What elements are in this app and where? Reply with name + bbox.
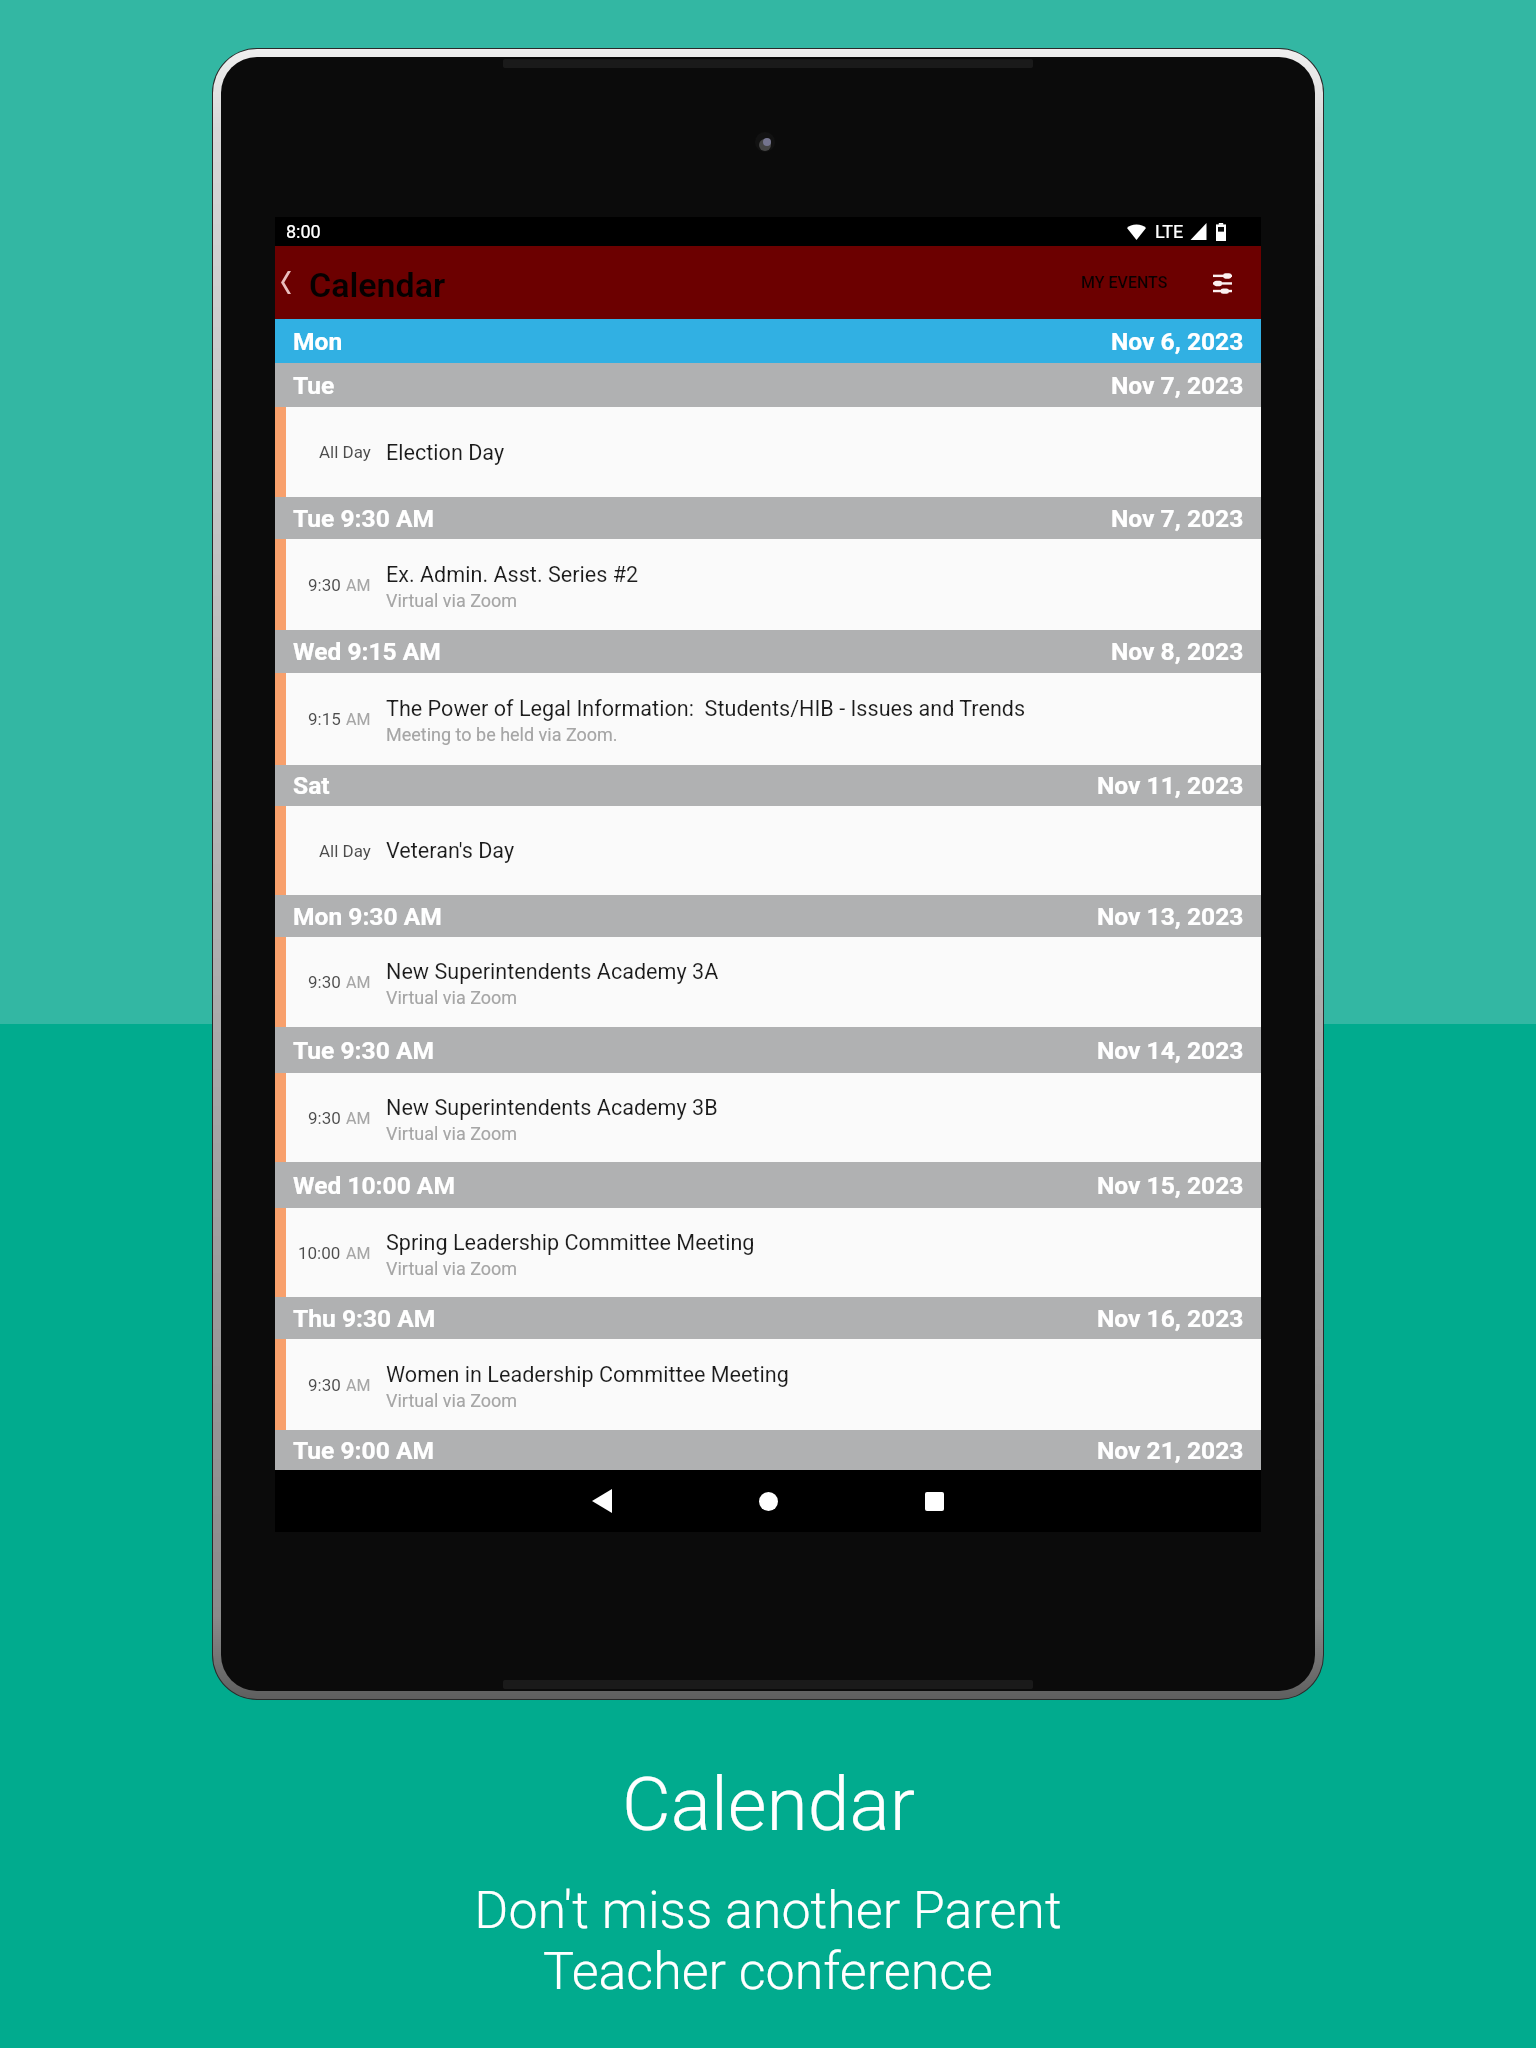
staticText: Women in Leadership Committee Meeting [386,1362,789,1387]
staticText: AM [346,1109,371,1128]
button[interactable]: Wed 9:15 AM [275,630,1261,673]
staticText: Nov 6, 2023 [1111,327,1244,356]
staticText: 9:15 [308,709,341,729]
button[interactable]: Tue [275,363,1261,407]
staticText: Mon [293,327,343,356]
button[interactable]: All Day [275,806,1261,895]
staticText: Spring Leadership Committee Meeting [386,1230,755,1255]
staticText: The Power of Legal Information: Students… [386,696,1026,721]
button[interactable]: 9:30 [275,539,1261,630]
staticText: Virtual via Zoom [386,1123,518,1144]
staticText: 9:30 [308,1108,341,1128]
staticText: 10:00 [298,1243,341,1263]
staticText: Calendar [622,1760,915,1848]
staticText: New Superintendents Academy 3B [386,1095,718,1120]
button[interactable]: Mon [275,319,1261,363]
staticText: Nov 11, 2023 [1097,771,1244,800]
staticText: Thu 9:30 AM [293,1304,436,1333]
staticText: Nov 16, 2023 [1097,1304,1244,1333]
staticText: Nov 7, 2023 [1111,371,1244,400]
button[interactable]: Filter [1196,257,1248,309]
staticText: Mon 9:30 AM [293,902,442,931]
staticText: Wed 9:15 AM [293,637,441,666]
staticText: Tue [293,371,335,400]
button[interactable]: Sat [275,765,1261,806]
staticText: 9:30 [308,1375,341,1395]
staticText: Nov 21, 2023 [1097,1436,1244,1465]
staticText: MY EVENTS [1081,273,1168,292]
button[interactable]: 9:30 [275,1073,1261,1162]
staticText: Don't miss another Parent Teacher confer… [474,1880,1062,2001]
staticText: New Superintendents Academy 3A [386,959,719,984]
button[interactable]: Back [275,246,309,319]
staticText: Virtual via Zoom [386,1258,518,1279]
button[interactable]: 10:00 [275,1208,1261,1297]
staticText: Tue 9:30 AM [293,1036,434,1065]
staticText: Ex. Admin. Asst. Series #2 [386,562,639,587]
button[interactable]: Mon 9:30 AM [275,895,1261,937]
button[interactable]: 9:15 [275,673,1261,765]
staticText: Meeting to be held via Zoom. [386,724,618,745]
staticText: AM [346,973,371,992]
staticText: Nov 15, 2023 [1097,1171,1244,1200]
staticText: Virtual via Zoom [386,590,518,611]
staticText: Nov 7, 2023 [1111,504,1244,533]
button[interactable]: 9:30 [275,1339,1261,1430]
staticText: Veteran's Day [386,838,515,863]
staticText: Virtual via Zoom [386,987,518,1008]
button[interactable]: Home [723,1470,813,1532]
button[interactable]: 9:30 [275,937,1261,1027]
button[interactable]: Back [557,1470,647,1532]
staticText: 9:30 [308,972,341,992]
button[interactable]: Recent apps [889,1470,979,1532]
staticText: Tue 9:00 AM [293,1436,434,1465]
button[interactable]: Thu 9:30 AM [275,1297,1261,1339]
staticText: Nov 14, 2023 [1097,1036,1244,1065]
button[interactable]: Wed 10:00 AM [275,1162,1261,1208]
staticText: LTE [1155,221,1184,242]
button[interactable]: Tue 9:30 AM [275,1027,1261,1073]
staticText: Tue 9:30 AM [293,504,434,533]
button[interactable]: Tue 9:00 AM [275,1430,1261,1470]
staticText: 8:00 [286,221,321,242]
staticText: Calendar [309,265,446,305]
staticText: Sat [293,771,330,800]
staticText: All Day [319,841,371,861]
staticText: Wed 10:00 AM [293,1171,455,1200]
staticText: 9:30 [308,575,341,595]
staticText: Nov 13, 2023 [1097,902,1244,931]
staticText: Virtual via Zoom [386,1390,518,1411]
staticText: All Day [319,442,371,462]
staticText: Election Day [386,440,505,465]
staticText: Nov 8, 2023 [1111,637,1244,666]
button[interactable]: Tue 9:30 AM [275,497,1261,539]
staticText: AM [346,1376,371,1395]
button[interactable]: MY EVENTS [1069,253,1180,312]
staticText: AM [346,1244,371,1263]
staticText: AM [346,576,371,595]
staticText: AM [346,710,371,729]
button[interactable]: All Day [275,407,1261,497]
